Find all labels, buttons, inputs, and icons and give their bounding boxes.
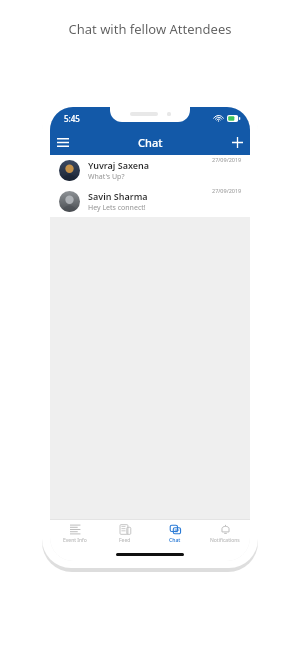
staticText: Chat with fellow Attendees bbox=[0, 20, 300, 38]
staticText: 27/09/2019 bbox=[212, 156, 242, 163]
button[interactable]: Yuvraj Saxena bbox=[50, 155, 250, 186]
staticText: Notifications bbox=[210, 537, 240, 544]
staticText: Savin Sharma bbox=[88, 190, 148, 202]
staticText: What's Up? bbox=[88, 172, 125, 182]
button[interactable]: Event Info bbox=[50, 520, 100, 548]
staticText: Yuvraj Saxena bbox=[88, 159, 150, 171]
staticText: 27/09/2019 bbox=[212, 187, 242, 194]
staticText: Chat bbox=[169, 537, 181, 544]
button[interactable]: Feed bbox=[100, 520, 150, 548]
button[interactable]: Chat bbox=[150, 520, 200, 548]
button[interactable]: Savin Sharma bbox=[50, 186, 250, 217]
staticText: 5:45 bbox=[64, 113, 80, 124]
staticText: Feed bbox=[119, 537, 131, 544]
staticText: Chat bbox=[138, 135, 163, 150]
button[interactable]: Notifications bbox=[200, 520, 250, 548]
button[interactable]: New chat bbox=[224, 129, 250, 155]
staticText: Hey Lets connect! bbox=[88, 203, 146, 213]
staticText: Event Info bbox=[63, 537, 87, 544]
button[interactable]: Menu bbox=[50, 129, 76, 155]
